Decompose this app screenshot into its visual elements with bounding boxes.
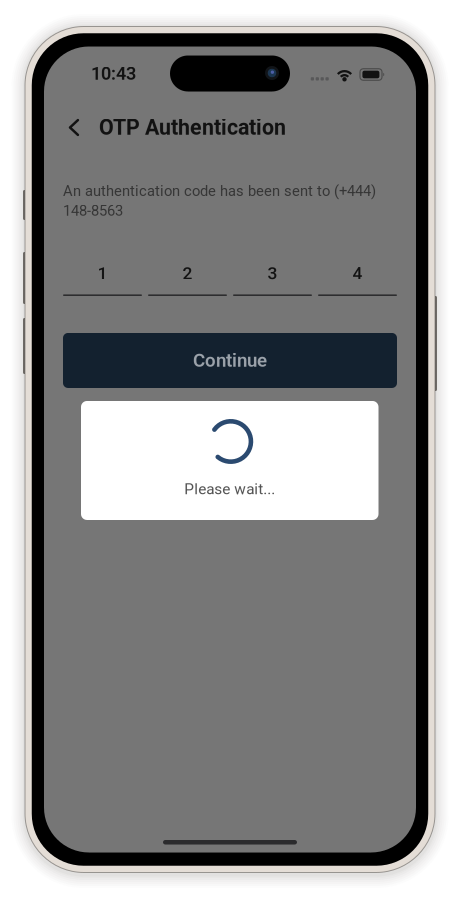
staticText: 1 <box>97 263 107 283</box>
staticText: OTP Authentication <box>99 115 286 140</box>
staticText: Please wait... <box>184 480 275 498</box>
button[interactable]: Continue <box>63 333 397 388</box>
staticText: 4 <box>352 263 362 283</box>
staticText: An authentication code has been sent to … <box>63 182 376 200</box>
button[interactable]: 1 <box>63 265 142 296</box>
staticText: 2 <box>182 263 192 283</box>
staticText: 148-8563 <box>63 202 123 219</box>
staticText: 3 <box>267 263 277 283</box>
button[interactable]: 3 <box>233 265 312 296</box>
staticText: Continue <box>193 349 267 371</box>
staticText: 10:43 <box>91 63 136 84</box>
button[interactable]: 2 <box>148 265 227 296</box>
button[interactable]: 4 <box>318 265 397 296</box>
button[interactable]: Back <box>57 105 91 149</box>
